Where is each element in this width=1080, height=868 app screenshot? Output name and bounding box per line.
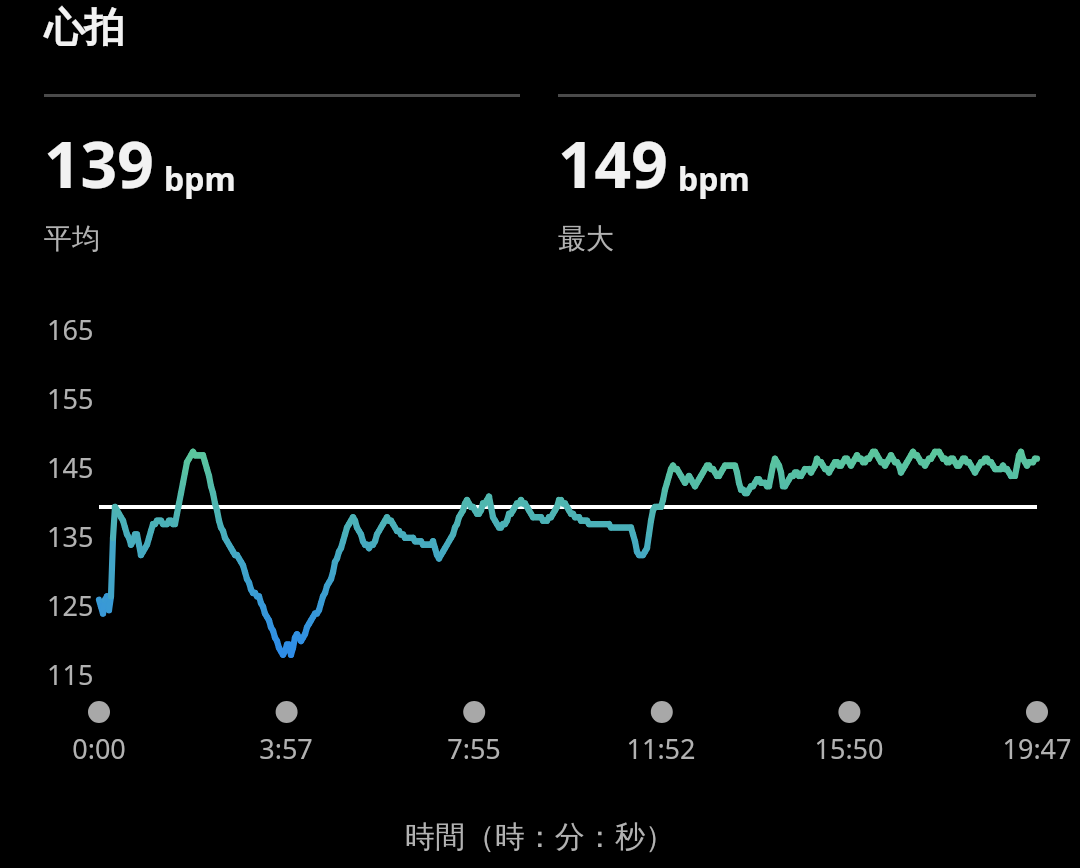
button[interactable]: 149 xyxy=(558,120,750,256)
staticText: 時間（時：分：秒） xyxy=(405,818,675,856)
button[interactable] xyxy=(0,0,1080,868)
staticText: 115 xyxy=(47,656,94,693)
staticText: 心拍 xyxy=(44,2,124,52)
staticText: 0:00 xyxy=(72,730,126,767)
staticText: 19:47 xyxy=(1002,730,1072,767)
staticText: 139 xyxy=(44,120,154,207)
staticText: bpm xyxy=(678,157,750,201)
staticText: 11:52 xyxy=(626,730,696,767)
staticText: bpm xyxy=(164,157,236,201)
staticText: 145 xyxy=(47,449,94,486)
staticText: 165 xyxy=(47,311,94,348)
staticText: 149 xyxy=(558,120,668,207)
staticText: 15:50 xyxy=(814,730,884,767)
staticText: 125 xyxy=(47,587,94,624)
staticText: 平均 xyxy=(44,221,100,256)
staticText: 135 xyxy=(47,518,94,555)
staticText: 155 xyxy=(47,380,94,417)
staticText: 7:55 xyxy=(447,730,501,767)
staticText: 3:57 xyxy=(259,730,313,767)
staticText: 最大 xyxy=(558,221,614,256)
button[interactable]: 139 xyxy=(44,120,236,256)
